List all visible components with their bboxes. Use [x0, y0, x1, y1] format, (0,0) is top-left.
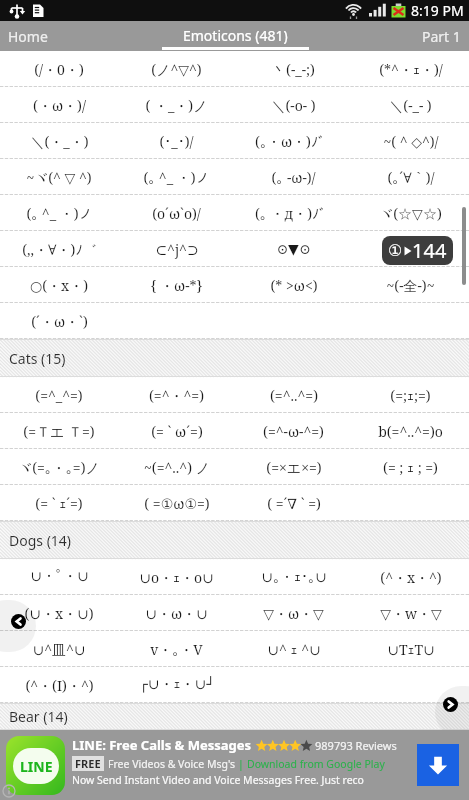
staticText: b(=^..^=)o [378, 422, 443, 441]
button[interactable]: ① [382, 236, 453, 265]
button[interactable]: ○(・x・) [0, 267, 118, 303]
button[interactable]: (/・0・) [0, 51, 118, 87]
button[interactable]: (o´ω`o)/ [118, 195, 235, 231]
button[interactable]: (∪・x・∪) [0, 595, 118, 631]
button[interactable]: (* >ω<) [235, 267, 352, 303]
staticText: ∪TｪT∪ [387, 640, 435, 659]
button[interactable]: ヾ(=｡・｡=)ノ [0, 449, 118, 485]
button[interactable]: Dogs (14) [0, 521, 469, 559]
button[interactable] [352, 231, 469, 267]
button[interactable]: ( =①ω①=) [118, 485, 235, 521]
button[interactable]: (= ` ω´=) [118, 413, 235, 449]
button[interactable]: ∪^ ｪ ^∪ [235, 631, 352, 667]
staticText: (= ; ｪ ; =) [383, 458, 438, 477]
button[interactable]: ~( ^ ◇^)/ [352, 123, 469, 159]
button[interactable]: Cats (15) [0, 339, 469, 377]
button[interactable]: ▽・w・▽ [352, 595, 469, 631]
button[interactable]: (=^_^=) [0, 377, 118, 413]
button[interactable]: (｡ ^_ ・)ノ [118, 159, 235, 195]
button[interactable]: ヾ(☆▽☆) [352, 195, 469, 231]
button[interactable]: Next page [443, 697, 458, 712]
button[interactable]: (･_･)/ [118, 123, 235, 159]
button[interactable]: Download [417, 744, 459, 786]
button[interactable]: ┌∪・ｪ・∪┘ [118, 667, 235, 703]
staticText: ∪^ ｪ ^∪ [267, 640, 321, 659]
button[interactable]: (=^-ω-^=) [235, 413, 352, 449]
staticText: Bear (14) [9, 707, 68, 726]
staticText: ⊙▼⊙ [276, 241, 311, 257]
staticText: ( =①ω①=) [144, 494, 210, 513]
button[interactable]: { ・ω-*} [118, 267, 235, 303]
button[interactable]: Download from Google Play [247, 757, 385, 771]
staticText: ∪o・ｪ・o∪ [139, 568, 214, 587]
staticText: (* >ω<) [270, 276, 318, 295]
staticText: (・ω・)/ [33, 96, 86, 115]
button[interactable] [118, 303, 235, 339]
button[interactable]: (^・x・^) [352, 559, 469, 595]
button[interactable]: Home [0, 21, 48, 51]
button[interactable]: ＼(-o- ) [235, 87, 352, 123]
button[interactable]: (= ` ｪ´=) [0, 485, 118, 521]
button[interactable]: (=Ｔエ Ｔ=) [0, 413, 118, 449]
button[interactable] [352, 303, 469, 339]
button[interactable]: (｡ -ω-)/ [235, 159, 352, 195]
button[interactable]: ⊂^j^⊃ [118, 231, 235, 267]
staticText: Now Send Instant Video and Voice Message… [72, 773, 364, 787]
button[interactable]: ＼(・_・) [0, 123, 118, 159]
button[interactable]: (,,・∀・)ﾉ゛ [0, 231, 118, 267]
button[interactable] [235, 303, 352, 339]
button[interactable]: ( =´∇ ` =) [235, 485, 352, 521]
staticText: ∪｡・ｪ･｡∪ [261, 569, 327, 585]
button[interactable]: (｡ ・д・)ﾉ゛ [235, 195, 352, 231]
button[interactable]: (=×エ×=) [235, 449, 352, 485]
staticText: (｡ ^_ ・)ノ [26, 204, 93, 223]
button[interactable]: ∪TｪT∪ [352, 631, 469, 667]
button[interactable]: ∪・ﾟ・∪ [0, 559, 118, 595]
button[interactable]: ∪｡・ｪ･｡∪ [235, 559, 352, 595]
button[interactable]: Emoticons (481) [160, 21, 310, 51]
button[interactable]: (=;ｪ;=) [352, 377, 469, 413]
button[interactable]: (*^・ｪ・)/ [352, 51, 469, 87]
button[interactable]: v・｡・V [118, 631, 235, 667]
button[interactable]: (・ω・)/ [0, 87, 118, 123]
button[interactable]: (^・(I)・^) [0, 667, 118, 703]
button[interactable]: (= ; ｪ ; =) [352, 449, 469, 485]
button[interactable]: ∪・ω・∪ [118, 595, 235, 631]
button[interactable] [352, 485, 469, 521]
button[interactable]: (｡ ^_ ・)ノ [0, 195, 118, 231]
button[interactable]: ~(=^..^) ノ [118, 449, 235, 485]
button[interactable]: ⊙▼⊙ [235, 231, 352, 267]
button[interactable]: ＼(-_- ) [352, 87, 469, 123]
staticText: Cats (15) [9, 349, 66, 368]
button[interactable]: b(=^..^=)o [352, 413, 469, 449]
staticText: LINE [20, 757, 53, 776]
staticText: ~ヾ(^ ▽ ^) [26, 168, 92, 187]
staticText: ∪・ω・∪ [145, 604, 208, 623]
button[interactable]: (｡・ω・)ﾉ゛ [235, 123, 352, 159]
staticText: ヾ(☆▽☆) [379, 204, 442, 223]
button[interactable]: Bear (14) [0, 703, 469, 730]
staticText: ∪・ﾟ・∪ [30, 568, 89, 586]
button[interactable]: (=^・^=) [118, 377, 235, 413]
button[interactable]: Previous page [11, 614, 26, 629]
button[interactable]: ~(-全-)~ [352, 267, 469, 303]
button[interactable]: ( ・_・)ノ [118, 87, 235, 123]
button[interactable]: 丶(-_-;) [235, 51, 352, 87]
staticText: (｡ -ω-)/ [271, 168, 316, 187]
button[interactable] [352, 667, 469, 703]
staticText: ⊂^j^⊃ [155, 240, 199, 259]
staticText: ＼(・_・) [30, 132, 89, 151]
button[interactable]: (｡´∀｀)/ [352, 159, 469, 195]
button[interactable]: ∪^皿^∪ [0, 631, 118, 667]
staticText: (*^・ｪ・)/ [379, 60, 443, 79]
button[interactable] [235, 667, 352, 703]
button[interactable]: (ノ^▽^) [118, 51, 235, 87]
button[interactable]: (=^..^=) [235, 377, 352, 413]
button[interactable]: ▽・ω・▽ [235, 595, 352, 631]
button[interactable]: LINE app icon [6, 736, 65, 795]
button[interactable]: Part 1 [422, 21, 469, 51]
button[interactable]: (´・ω・`) [0, 303, 118, 339]
button[interactable]: ∪o・ｪ・o∪ [118, 559, 235, 595]
staticText: (=;ｪ;=) [390, 386, 431, 405]
button[interactable]: ~ヾ(^ ▽ ^) [0, 159, 118, 195]
